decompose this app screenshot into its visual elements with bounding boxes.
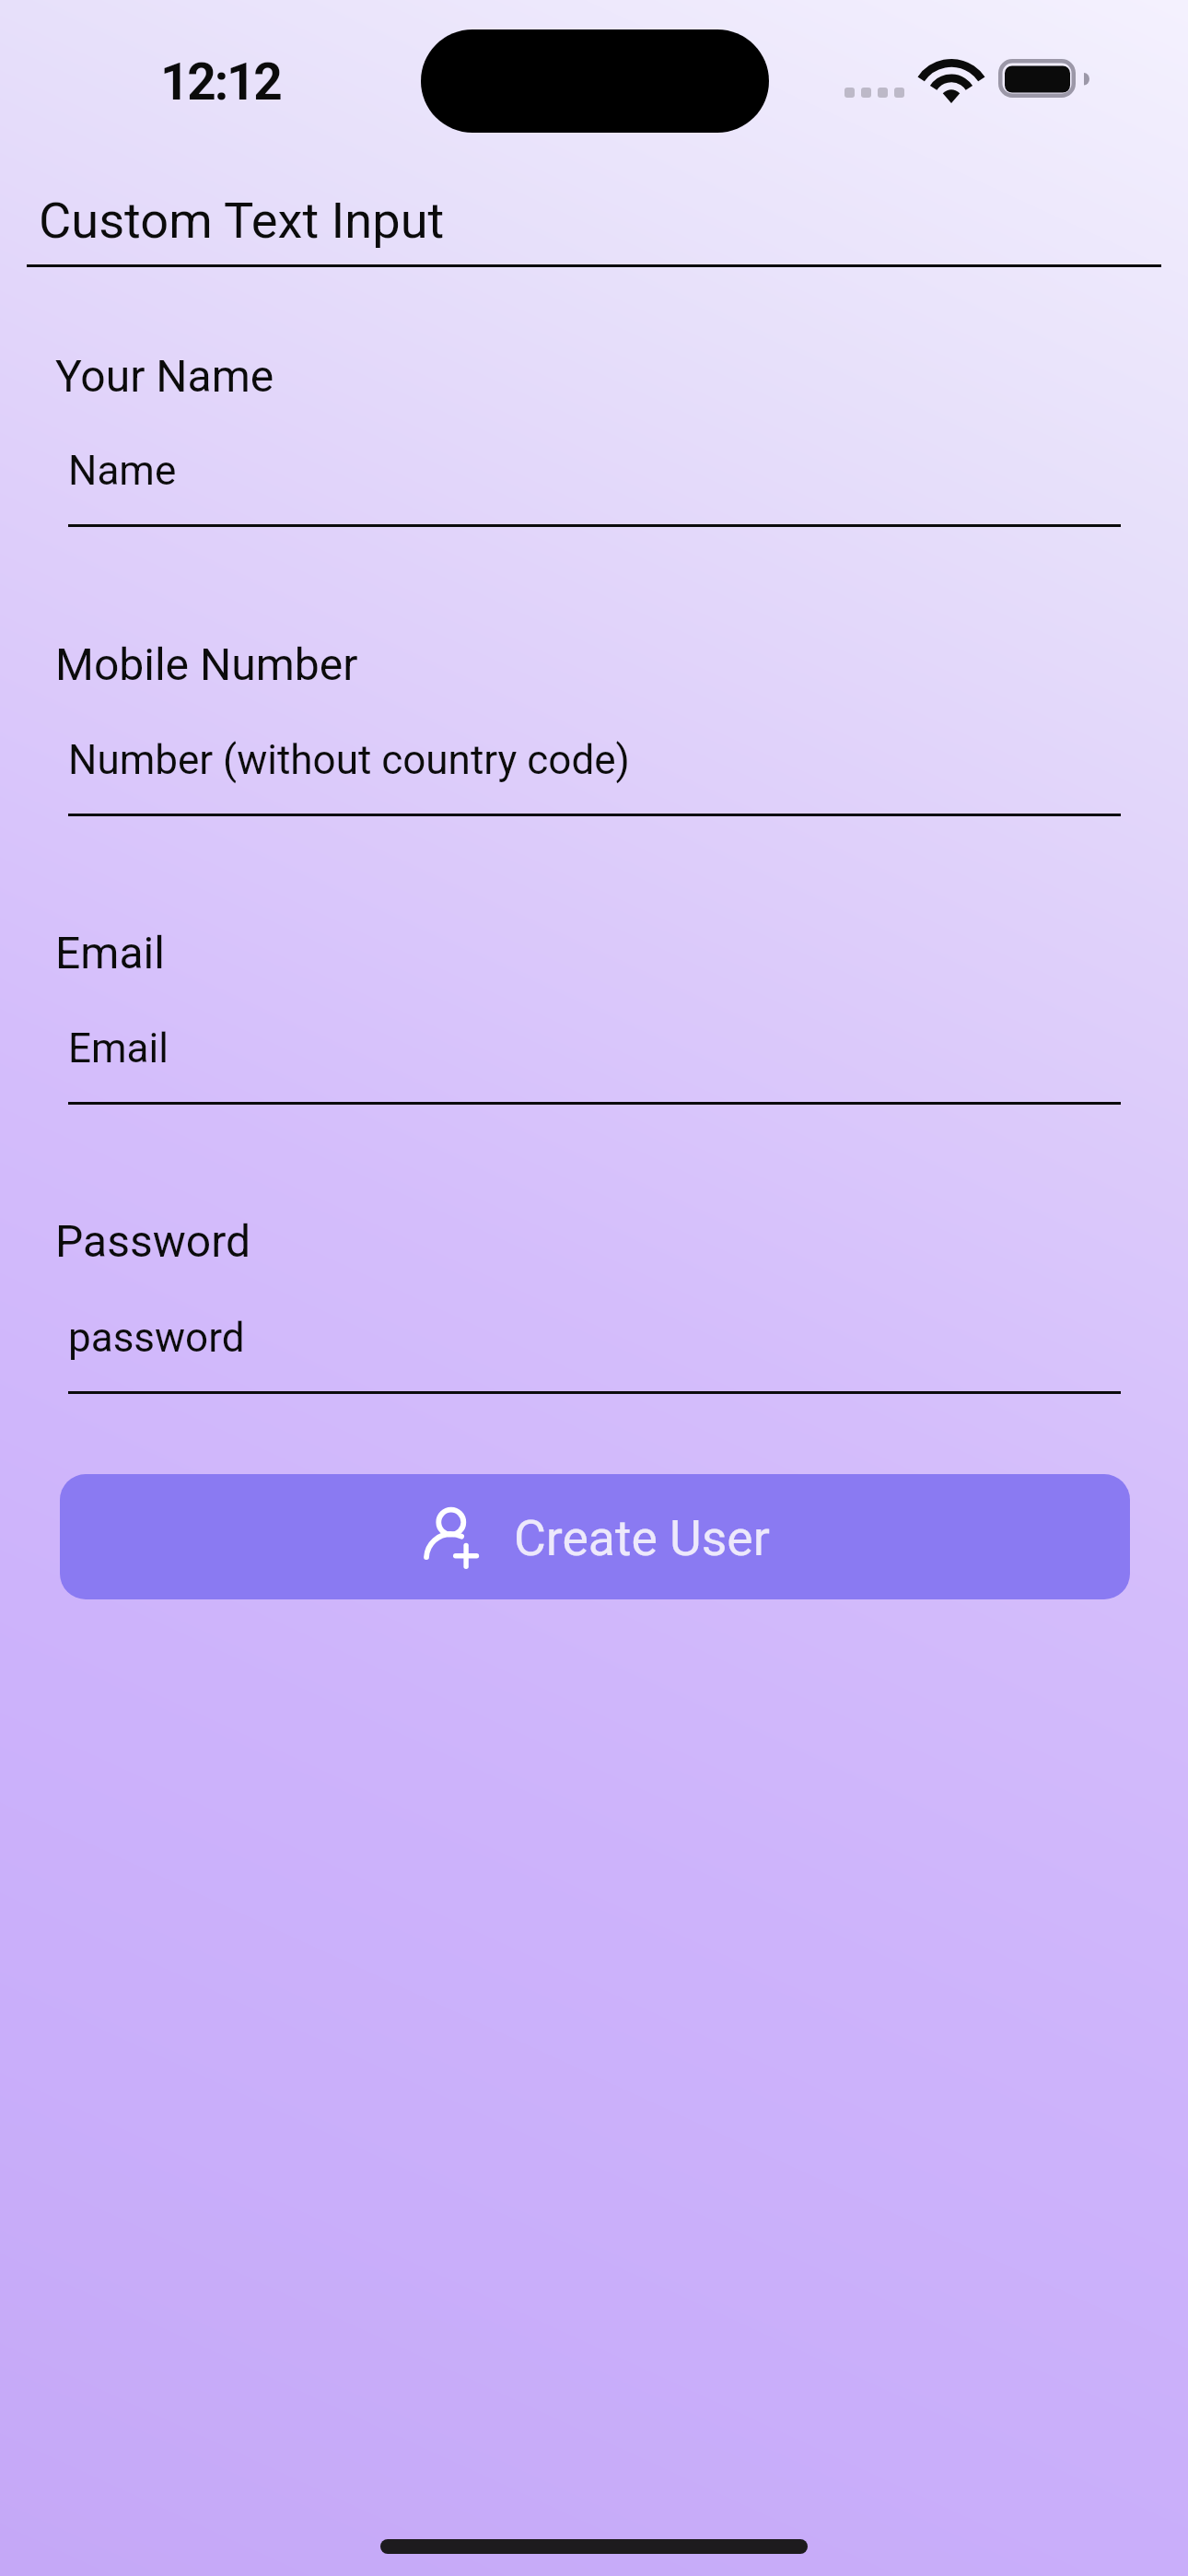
staticText: Email <box>68 1025 169 1072</box>
staticText: Name <box>68 447 177 495</box>
other: Wi-Fi <box>925 59 978 100</box>
button[interactable]: Name <box>68 436 1121 527</box>
button[interactable]: Create User <box>60 1474 1130 1599</box>
staticText: password <box>68 1314 245 1362</box>
button[interactable]: Number (without country code) <box>68 725 1121 816</box>
staticText: Your Name <box>55 350 274 402</box>
staticText: Create User <box>514 1509 770 1567</box>
staticText: Mobile Number <box>55 638 358 690</box>
staticText: Number (without country code) <box>68 736 630 784</box>
button[interactable]: password <box>68 1303 1121 1394</box>
other: Battery <box>998 59 1085 99</box>
staticText: 12:12 <box>160 53 281 111</box>
staticText: Custom Text Input <box>39 192 445 251</box>
button[interactable]: Email <box>68 1013 1121 1105</box>
staticText: Password <box>55 1215 251 1267</box>
staticText: Email <box>55 927 165 978</box>
